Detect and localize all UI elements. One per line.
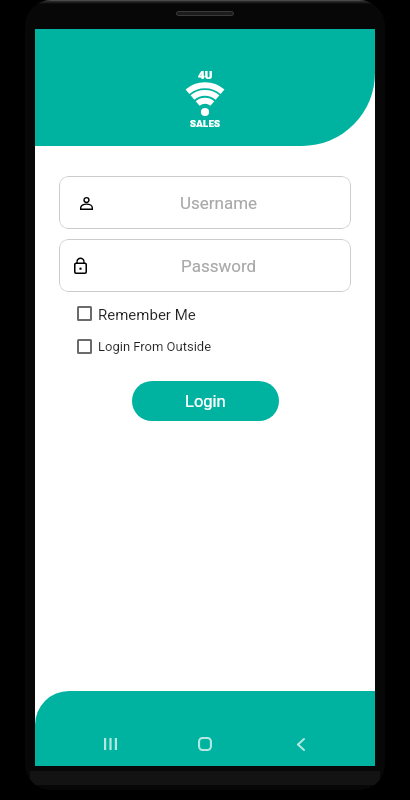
button[interactable]: Remember Me — [77, 306, 196, 321]
staticText: 4U — [198, 68, 213, 81]
staticText: Username — [180, 193, 258, 213]
staticText: Login From Outside — [98, 339, 212, 354]
button[interactable]: Username — [59, 176, 351, 229]
staticText: Login — [185, 392, 226, 411]
button[interactable]: Recent apps — [93, 727, 127, 761]
button[interactable]: Login — [132, 381, 279, 421]
button[interactable]: Home — [188, 727, 222, 761]
staticText: Remember Me — [98, 306, 196, 321]
staticText: Password — [181, 256, 257, 276]
button[interactable]: Password — [59, 239, 351, 292]
button[interactable]: Back — [284, 727, 318, 761]
button[interactable]: Login From Outside — [77, 339, 212, 354]
staticText: SALES — [190, 118, 221, 129]
